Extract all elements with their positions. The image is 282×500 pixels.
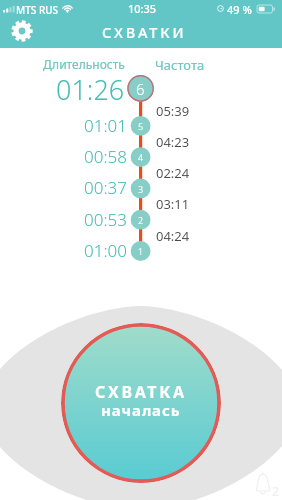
staticText: 4 (138, 151, 144, 163)
staticText: Частота (155, 56, 205, 74)
staticText: СХВАТКА (95, 381, 187, 403)
staticText: 05:39 (156, 102, 190, 118)
staticText: 03:11 (156, 195, 190, 211)
staticText: 01:00 (84, 239, 127, 259)
staticText: MTS RUS (16, 3, 59, 17)
staticText: 1 (138, 245, 144, 257)
staticText: началась (101, 400, 181, 420)
staticText: 01:01 (84, 114, 127, 134)
staticText: СХВАТКИ (102, 22, 187, 42)
staticText: 6 (136, 79, 145, 99)
staticText: 00:37 (84, 176, 127, 196)
staticText: 04:24 (156, 227, 190, 243)
staticText: 2 (138, 214, 144, 226)
staticText: 02:24 (156, 164, 190, 180)
staticText: Длительность (43, 56, 125, 72)
staticText: 3 (138, 183, 144, 195)
staticText: 2 (272, 483, 279, 499)
button[interactable]: СХВАТКА (61, 323, 221, 483)
button[interactable]: Settings (7, 16, 36, 45)
button[interactable]: Alarms (254, 470, 282, 496)
staticText: 10:35 (128, 1, 157, 16)
staticText: 00:53 (84, 208, 127, 228)
staticText: 01:26 (56, 71, 125, 108)
staticText: 04:23 (156, 133, 190, 149)
staticText: 49 % (227, 2, 252, 17)
staticText: 5 (138, 120, 144, 132)
staticText: 00:58 (84, 145, 127, 165)
